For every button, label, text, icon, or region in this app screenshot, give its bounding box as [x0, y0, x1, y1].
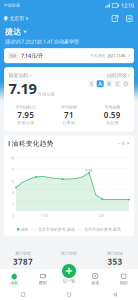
staticText: 12:10 — [121, 2, 134, 9]
button[interactable]: 油耗评级 — [107, 72, 129, 79]
staticText: 发现 — [91, 280, 99, 285]
staticText: 平均油耗 — [16, 105, 32, 109]
staticText: 累计里程 — [15, 251, 31, 256]
staticText: D — [124, 80, 128, 87]
button[interactable]: 最新油耗 — [8, 72, 31, 79]
button[interactable]: Share — [107, 11, 123, 26]
staticText: 353 — [107, 256, 122, 267]
staticText: 平均里程 — [61, 105, 77, 109]
staticText: C — [116, 80, 119, 87]
staticText: 油耗变化趋势 — [12, 139, 54, 148]
staticText: 92# — [9, 53, 16, 58]
button[interactable]: Back — [92, 289, 138, 300]
staticText: A — [98, 80, 102, 87]
staticText: 4 — [12, 190, 14, 195]
staticText: S — [90, 80, 93, 87]
button[interactable]: 92# — [4, 48, 134, 63]
staticText — [68, 256, 70, 267]
staticText: 0 — [12, 213, 14, 219]
staticText: 公里/次 — [62, 120, 75, 125]
staticText: 升/百公里 — [17, 120, 34, 125]
staticText: 油耗 — [21, 227, 29, 232]
staticText: 下次调价 — [89, 53, 105, 58]
staticText: 元/公里 — [106, 120, 119, 125]
button[interactable]: Recents — [0, 289, 46, 300]
button[interactable]: 捷达 — [5, 27, 27, 37]
staticText: 8 — [12, 167, 14, 172]
staticText: 11/5 — [41, 213, 48, 218]
staticText: 中国联通 — [4, 3, 20, 8]
button[interactable]: Reminders — [123, 11, 136, 26]
staticText: 7.14元/升 — [21, 52, 43, 59]
staticText: 2 — [12, 202, 14, 207]
staticText: 我的 — [120, 280, 128, 285]
staticText: 71 — [64, 110, 74, 120]
staticText: 7.19 — [85, 168, 92, 173]
staticText: 北京市油价参考-最低 — [38, 227, 75, 232]
button[interactable]: 费用 — [28, 269, 57, 289]
staticText: 0.59 — [104, 110, 121, 120]
staticText: 升/百公里 — [38, 91, 55, 97]
staticText: 统计里程 — [61, 251, 77, 256]
staticText: 平均油费 — [104, 105, 120, 109]
staticText: 一年 — [117, 141, 125, 146]
staticText: 捷达 — [5, 27, 21, 37]
staticText: 3787 — [13, 256, 33, 267]
button[interactable]: 北京市 — [0, 11, 32, 26]
staticText: 最新油耗 — [8, 72, 28, 79]
staticText: 油耗评级 — [107, 72, 127, 79]
staticText: 记一笔 — [63, 279, 75, 283]
staticText: 捷达VS7 2021款 1.4T 自动豪华型 — [5, 38, 79, 45]
staticText: 7.95 — [17, 110, 34, 120]
staticText: 7.19 — [8, 79, 36, 98]
staticText: 6 — [12, 178, 14, 184]
button[interactable]: 我的 — [109, 269, 138, 289]
staticText: 费用 — [39, 280, 47, 285]
staticText: 2021-11-06 — [107, 53, 125, 58]
staticText: B — [107, 80, 110, 87]
staticText: 累计加油 — [107, 251, 123, 256]
button[interactable]: 发现 — [81, 269, 109, 289]
staticText: 12/5 — [97, 213, 104, 218]
button[interactable]: 记一笔 — [62, 264, 76, 283]
button[interactable]: 一年 — [117, 141, 129, 146]
staticText: 油耗 — [10, 280, 18, 285]
staticText: 10 — [10, 155, 14, 161]
button[interactable]: 油耗 — [0, 269, 28, 289]
staticText: 北京市油价参考-最高 — [84, 227, 121, 232]
button[interactable]: Home — [46, 289, 92, 300]
staticText: 北京市 — [9, 15, 24, 22]
